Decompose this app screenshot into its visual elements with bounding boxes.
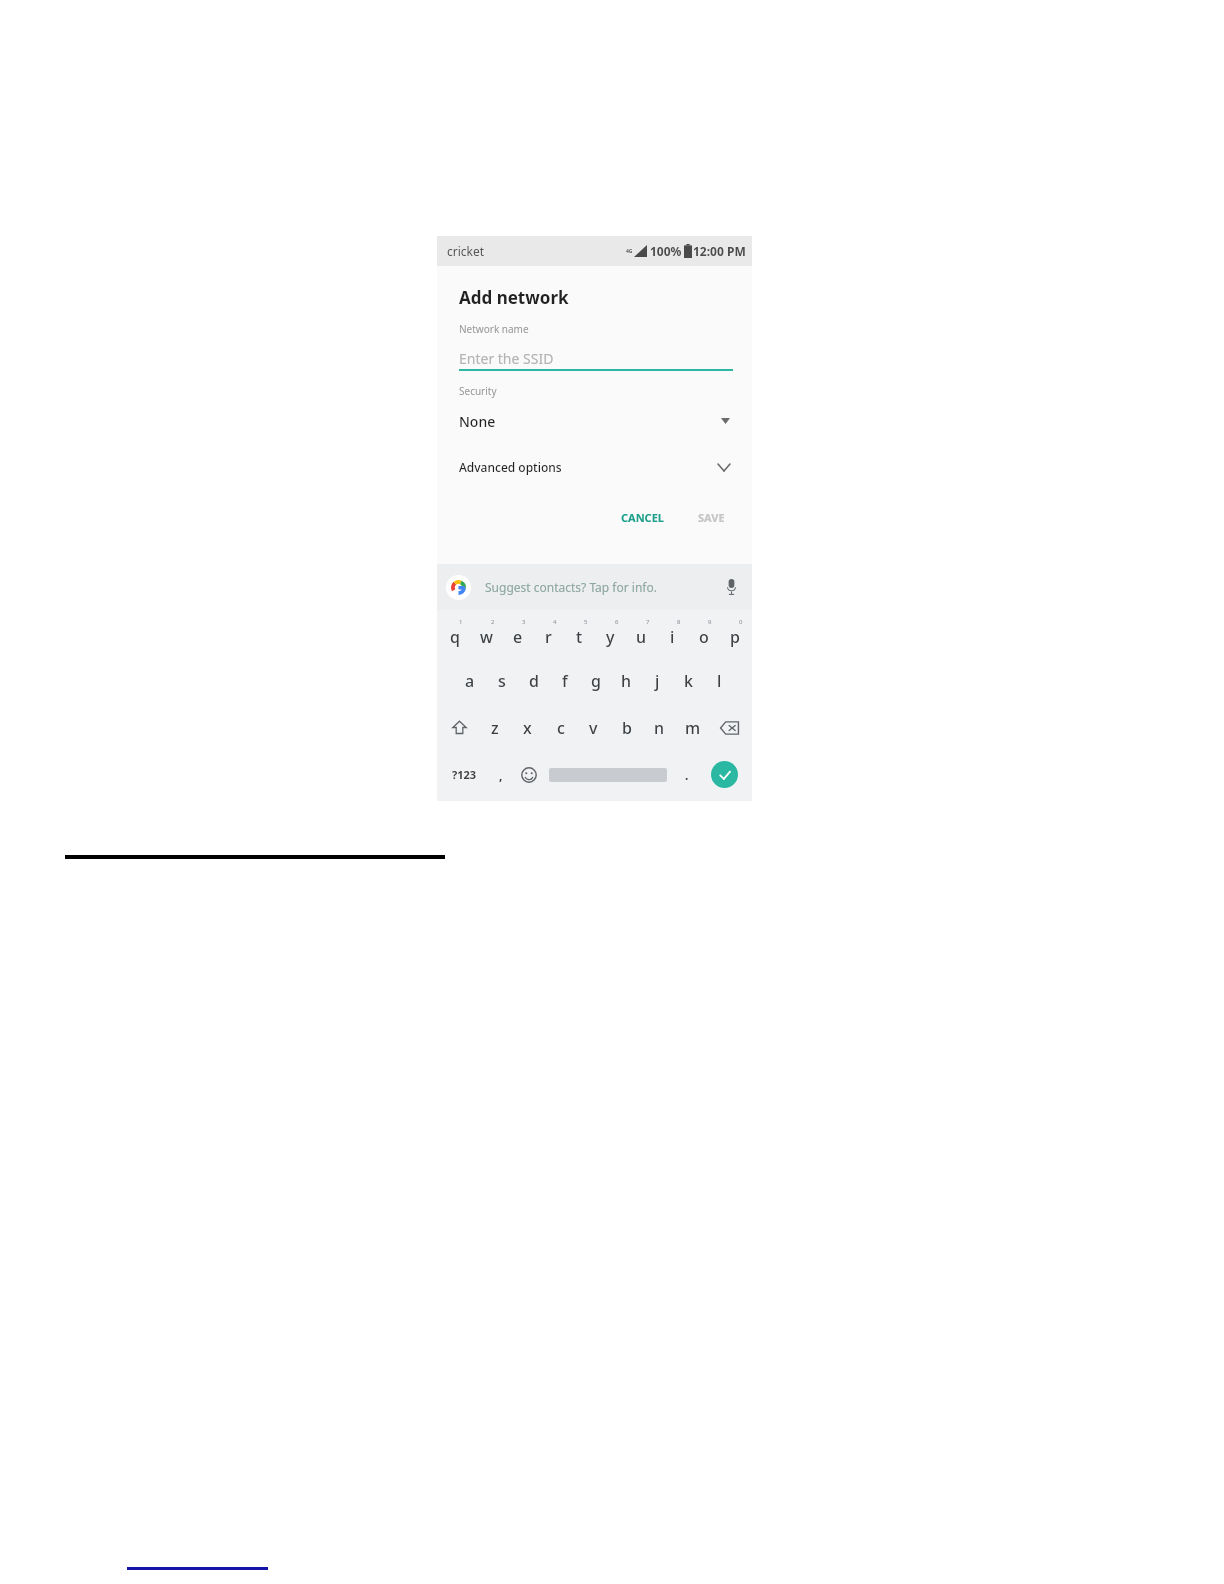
staticText: None <box>459 412 496 431</box>
button[interactable]: f <box>549 657 580 704</box>
button[interactable]: x <box>511 704 544 751</box>
staticText: r <box>545 626 552 648</box>
staticText: . <box>685 767 689 783</box>
staticText: e <box>513 626 523 648</box>
staticText: b <box>622 717 632 739</box>
button[interactable]: z <box>479 704 511 751</box>
button[interactable]: Emoji <box>513 751 544 798</box>
staticText: v <box>589 717 598 739</box>
staticText: CANCEL <box>621 510 664 525</box>
button[interactable]: k <box>673 657 704 704</box>
button[interactable]: b <box>610 704 643 751</box>
button[interactable]: 3 <box>502 610 533 657</box>
button[interactable]: d <box>518 657 549 704</box>
button[interactable]: 8 <box>657 610 688 657</box>
button[interactable]: 9 <box>688 610 719 657</box>
button[interactable]: . <box>672 751 701 798</box>
staticText: Add network <box>459 286 569 309</box>
button[interactable]: 5 <box>564 610 595 657</box>
button[interactable]: a <box>454 657 486 704</box>
staticText: i <box>670 626 675 648</box>
button[interactable]: v <box>577 704 610 751</box>
staticText: u <box>636 626 647 648</box>
staticText: 3 <box>522 618 526 626</box>
staticText: y <box>606 626 615 648</box>
staticText: x <box>523 717 532 739</box>
staticText: a <box>465 670 475 692</box>
button[interactable]: 7 <box>626 610 657 657</box>
staticText: 5 <box>584 618 588 626</box>
staticText: 12:00 PM <box>693 243 746 259</box>
staticText: ?123 <box>452 767 477 782</box>
button[interactable]: c <box>544 704 577 751</box>
staticText: 4G <box>626 248 633 255</box>
staticText: 6 <box>615 618 619 626</box>
button[interactable]: 2 <box>471 610 502 657</box>
button[interactable]: 4 <box>533 610 564 657</box>
button[interactable]: g <box>580 657 611 704</box>
staticText: 100% <box>650 243 682 259</box>
button[interactable]: Done <box>701 751 748 798</box>
button[interactable]: Shift <box>439 704 479 751</box>
staticText: 9 <box>708 618 712 626</box>
staticText: c <box>557 717 565 739</box>
staticText: k <box>684 670 693 692</box>
staticText: s <box>498 670 506 692</box>
button[interactable]: 6 <box>595 610 626 657</box>
staticText: q <box>450 626 460 648</box>
staticText: 2 <box>491 618 495 626</box>
staticText: Suggest contacts? Tap for info. <box>485 579 657 595</box>
staticText: Enter the SSID <box>459 349 554 368</box>
button[interactable]: Enter the SSID <box>459 345 733 371</box>
button[interactable]: Suggest contacts? Tap for info. <box>437 564 752 610</box>
button[interactable]: Backspace <box>709 704 750 751</box>
button[interactable]: ?123 <box>441 751 488 798</box>
button[interactable]: None <box>459 409 733 433</box>
staticText: t <box>576 626 583 648</box>
staticText: Advanced options <box>459 459 562 475</box>
staticText: 4 <box>553 618 557 626</box>
staticText: p <box>730 626 740 648</box>
staticText: o <box>699 626 709 648</box>
button[interactable]: Space <box>544 751 672 798</box>
button[interactable]: CANCEL <box>613 505 672 530</box>
staticText: m <box>685 717 701 739</box>
button[interactable]: l <box>704 657 735 704</box>
staticText: g <box>591 670 601 692</box>
button[interactable]: s <box>486 657 518 704</box>
staticText: l <box>717 670 722 692</box>
button[interactable]: n <box>643 704 676 751</box>
button[interactable]: , <box>488 751 513 798</box>
staticText: w <box>480 626 493 648</box>
button[interactable]: SAVE <box>690 505 733 530</box>
button[interactable]: h <box>611 657 642 704</box>
other: Expand advanced options <box>715 458 733 476</box>
staticText: j <box>655 670 660 692</box>
staticText: cricket <box>447 243 485 259</box>
staticText: n <box>654 717 665 739</box>
button[interactable]: Voice input <box>718 574 744 600</box>
button[interactable]: j <box>642 657 673 704</box>
staticText: h <box>621 670 632 692</box>
staticText: z <box>491 717 499 739</box>
button[interactable]: Advanced options <box>459 455 733 479</box>
staticText: SAVE <box>698 510 725 525</box>
staticText: f <box>562 670 568 692</box>
staticText: Network name <box>459 322 529 336</box>
staticText: 7 <box>646 618 650 626</box>
staticText: d <box>529 670 539 692</box>
button[interactable]: 1 <box>439 610 471 657</box>
staticText: , <box>499 767 503 783</box>
staticText: Security <box>459 384 497 398</box>
button[interactable]: 0 <box>719 610 750 657</box>
staticText: 8 <box>677 618 681 626</box>
other: Open security dropdown <box>717 413 733 429</box>
staticText: 1 <box>459 618 463 626</box>
button[interactable]: m <box>676 704 709 751</box>
staticText: 0 <box>739 618 743 626</box>
